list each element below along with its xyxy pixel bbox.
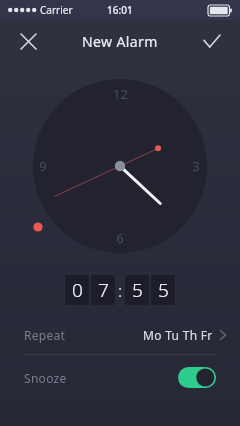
staticText: 7 <box>98 277 109 303</box>
staticText: New Alarm <box>82 32 158 51</box>
staticText: 12 <box>113 85 128 103</box>
staticText: 5 <box>158 277 169 303</box>
staticText: 5 <box>132 277 143 303</box>
staticText: Carrier <box>40 3 73 17</box>
staticText: : <box>118 279 123 302</box>
staticText: Snooze <box>24 370 67 386</box>
staticText: 6 <box>116 229 124 247</box>
staticText: 0 <box>72 277 83 303</box>
button[interactable]: Repeat <box>0 316 240 354</box>
button[interactable]: Snooze toggle, on <box>178 367 216 388</box>
button[interactable]: 0 <box>0 274 240 306</box>
button[interactable]: Save alarm <box>196 25 228 57</box>
staticText: 16:01 <box>107 3 133 17</box>
button[interactable]: Cancel <box>12 25 44 57</box>
staticText: 3 <box>192 157 200 175</box>
staticText: Repeat <box>24 327 66 343</box>
staticText: 9 <box>39 157 47 175</box>
staticText: Mo Tu Th Fr <box>143 327 213 343</box>
button[interactable]: Snooze <box>0 355 240 400</box>
